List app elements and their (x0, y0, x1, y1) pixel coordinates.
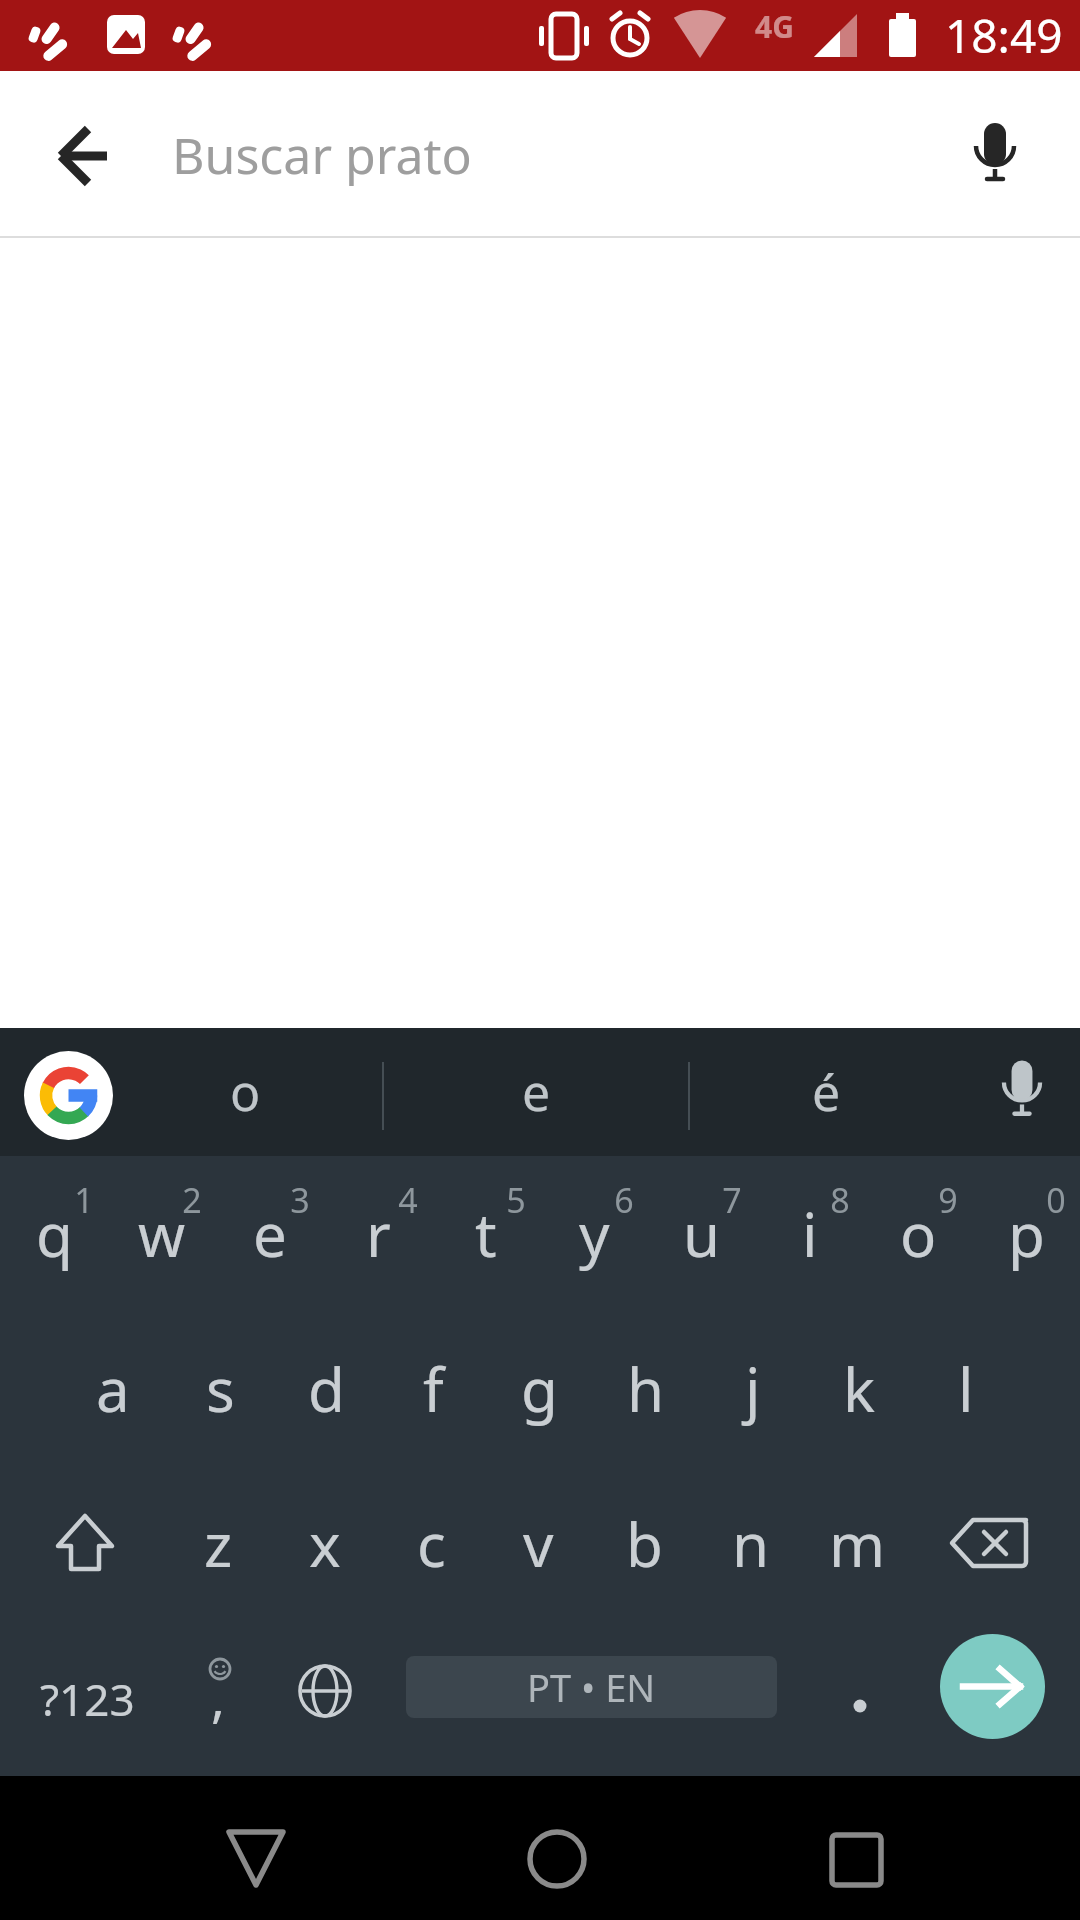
button[interactable]: a (60, 1311, 166, 1466)
staticText: 8 (830, 1177, 850, 1223)
button[interactable] (810, 1621, 910, 1776)
staticText: é (812, 1058, 841, 1126)
staticText: j (745, 1348, 761, 1430)
button[interactable]: t (432, 1156, 540, 1311)
staticText: w (138, 1193, 186, 1275)
button[interactable]: f (380, 1311, 486, 1466)
staticText: Buscar prato (172, 121, 472, 189)
button[interactable]: p (972, 1156, 1080, 1311)
button[interactable]: z (165, 1466, 271, 1621)
button[interactable]: e (216, 1156, 324, 1311)
staticText: 0 (1046, 1177, 1066, 1223)
button[interactable] (20, 1466, 150, 1621)
button[interactable]: h (593, 1311, 699, 1466)
button[interactable]: d (273, 1311, 379, 1466)
staticText: 5 (506, 1177, 526, 1223)
staticText: 9 (938, 1177, 958, 1223)
button[interactable]: e (385, 1028, 687, 1156)
button[interactable]: u (648, 1156, 756, 1311)
staticText: 3 (290, 1177, 310, 1223)
staticText: d (308, 1348, 345, 1430)
button[interactable] (196, 1800, 316, 1920)
button[interactable] (497, 1800, 617, 1920)
button[interactable]: n (698, 1466, 804, 1621)
staticText: 7 (722, 1177, 742, 1223)
staticText: c (417, 1503, 446, 1585)
button[interactable] (935, 96, 1055, 216)
button[interactable]: v (485, 1466, 591, 1621)
button[interactable]: i (756, 1156, 864, 1311)
staticText: z (204, 1503, 233, 1585)
staticText: f (423, 1348, 444, 1430)
button[interactable]: m (804, 1466, 910, 1621)
staticText: e (253, 1193, 287, 1275)
button[interactable]: q (0, 1156, 108, 1311)
staticText: r (366, 1193, 391, 1275)
staticText: ?123 (40, 1669, 135, 1729)
staticText: q (36, 1193, 73, 1275)
button[interactable]: l (913, 1311, 1019, 1466)
staticText: t (475, 1193, 497, 1275)
button[interactable]: y (540, 1156, 648, 1311)
button[interactable] (160, 1621, 276, 1776)
staticText: p (1008, 1193, 1045, 1275)
button[interactable] (276, 1621, 376, 1776)
staticText: o (900, 1193, 937, 1275)
button[interactable]: x (272, 1466, 378, 1621)
staticText: v (523, 1503, 554, 1585)
staticText: 4 (398, 1177, 418, 1223)
staticText: a (96, 1348, 130, 1430)
button[interactable]: é (691, 1028, 961, 1156)
staticText: s (206, 1348, 235, 1430)
button[interactable]: b (591, 1466, 697, 1621)
button[interactable] (962, 1032, 1080, 1152)
button[interactable]: PT • EN (406, 1656, 777, 1718)
staticText: , (211, 1661, 225, 1732)
button[interactable]: r (324, 1156, 432, 1311)
staticText: 4G (755, 6, 794, 47)
button[interactable]: o (864, 1156, 972, 1311)
staticText: 2 (182, 1177, 202, 1223)
button[interactable] (940, 1634, 1045, 1739)
staticText: h (627, 1348, 665, 1430)
staticText: e (522, 1058, 551, 1126)
staticText: g (521, 1348, 558, 1430)
button[interactable]: k (806, 1311, 912, 1466)
staticText: b (626, 1503, 663, 1585)
staticText: 18:49 (945, 4, 1063, 67)
staticText: i (802, 1193, 818, 1275)
staticText: m (829, 1503, 886, 1585)
staticText: PT • EN (527, 1661, 656, 1713)
staticText: n (732, 1503, 770, 1585)
staticText: k (843, 1348, 876, 1430)
button[interactable]: c (378, 1466, 484, 1621)
button[interactable]: g (486, 1311, 592, 1466)
button[interactable] (24, 1051, 113, 1140)
staticText: y (579, 1193, 610, 1275)
button[interactable]: j (700, 1311, 806, 1466)
button[interactable]: o (120, 1028, 370, 1156)
staticText: u (683, 1193, 721, 1275)
button[interactable]: s (167, 1311, 273, 1466)
button[interactable] (796, 1800, 916, 1920)
staticText: 6 (614, 1177, 634, 1223)
button[interactable]: ?123 (20, 1621, 154, 1776)
staticText: l (958, 1348, 974, 1430)
staticText: 1 (74, 1177, 94, 1223)
staticText: x (309, 1503, 341, 1585)
staticText: o (230, 1058, 261, 1126)
button[interactable] (928, 1466, 1060, 1621)
button[interactable] (24, 96, 144, 216)
button[interactable]: w (108, 1156, 216, 1311)
